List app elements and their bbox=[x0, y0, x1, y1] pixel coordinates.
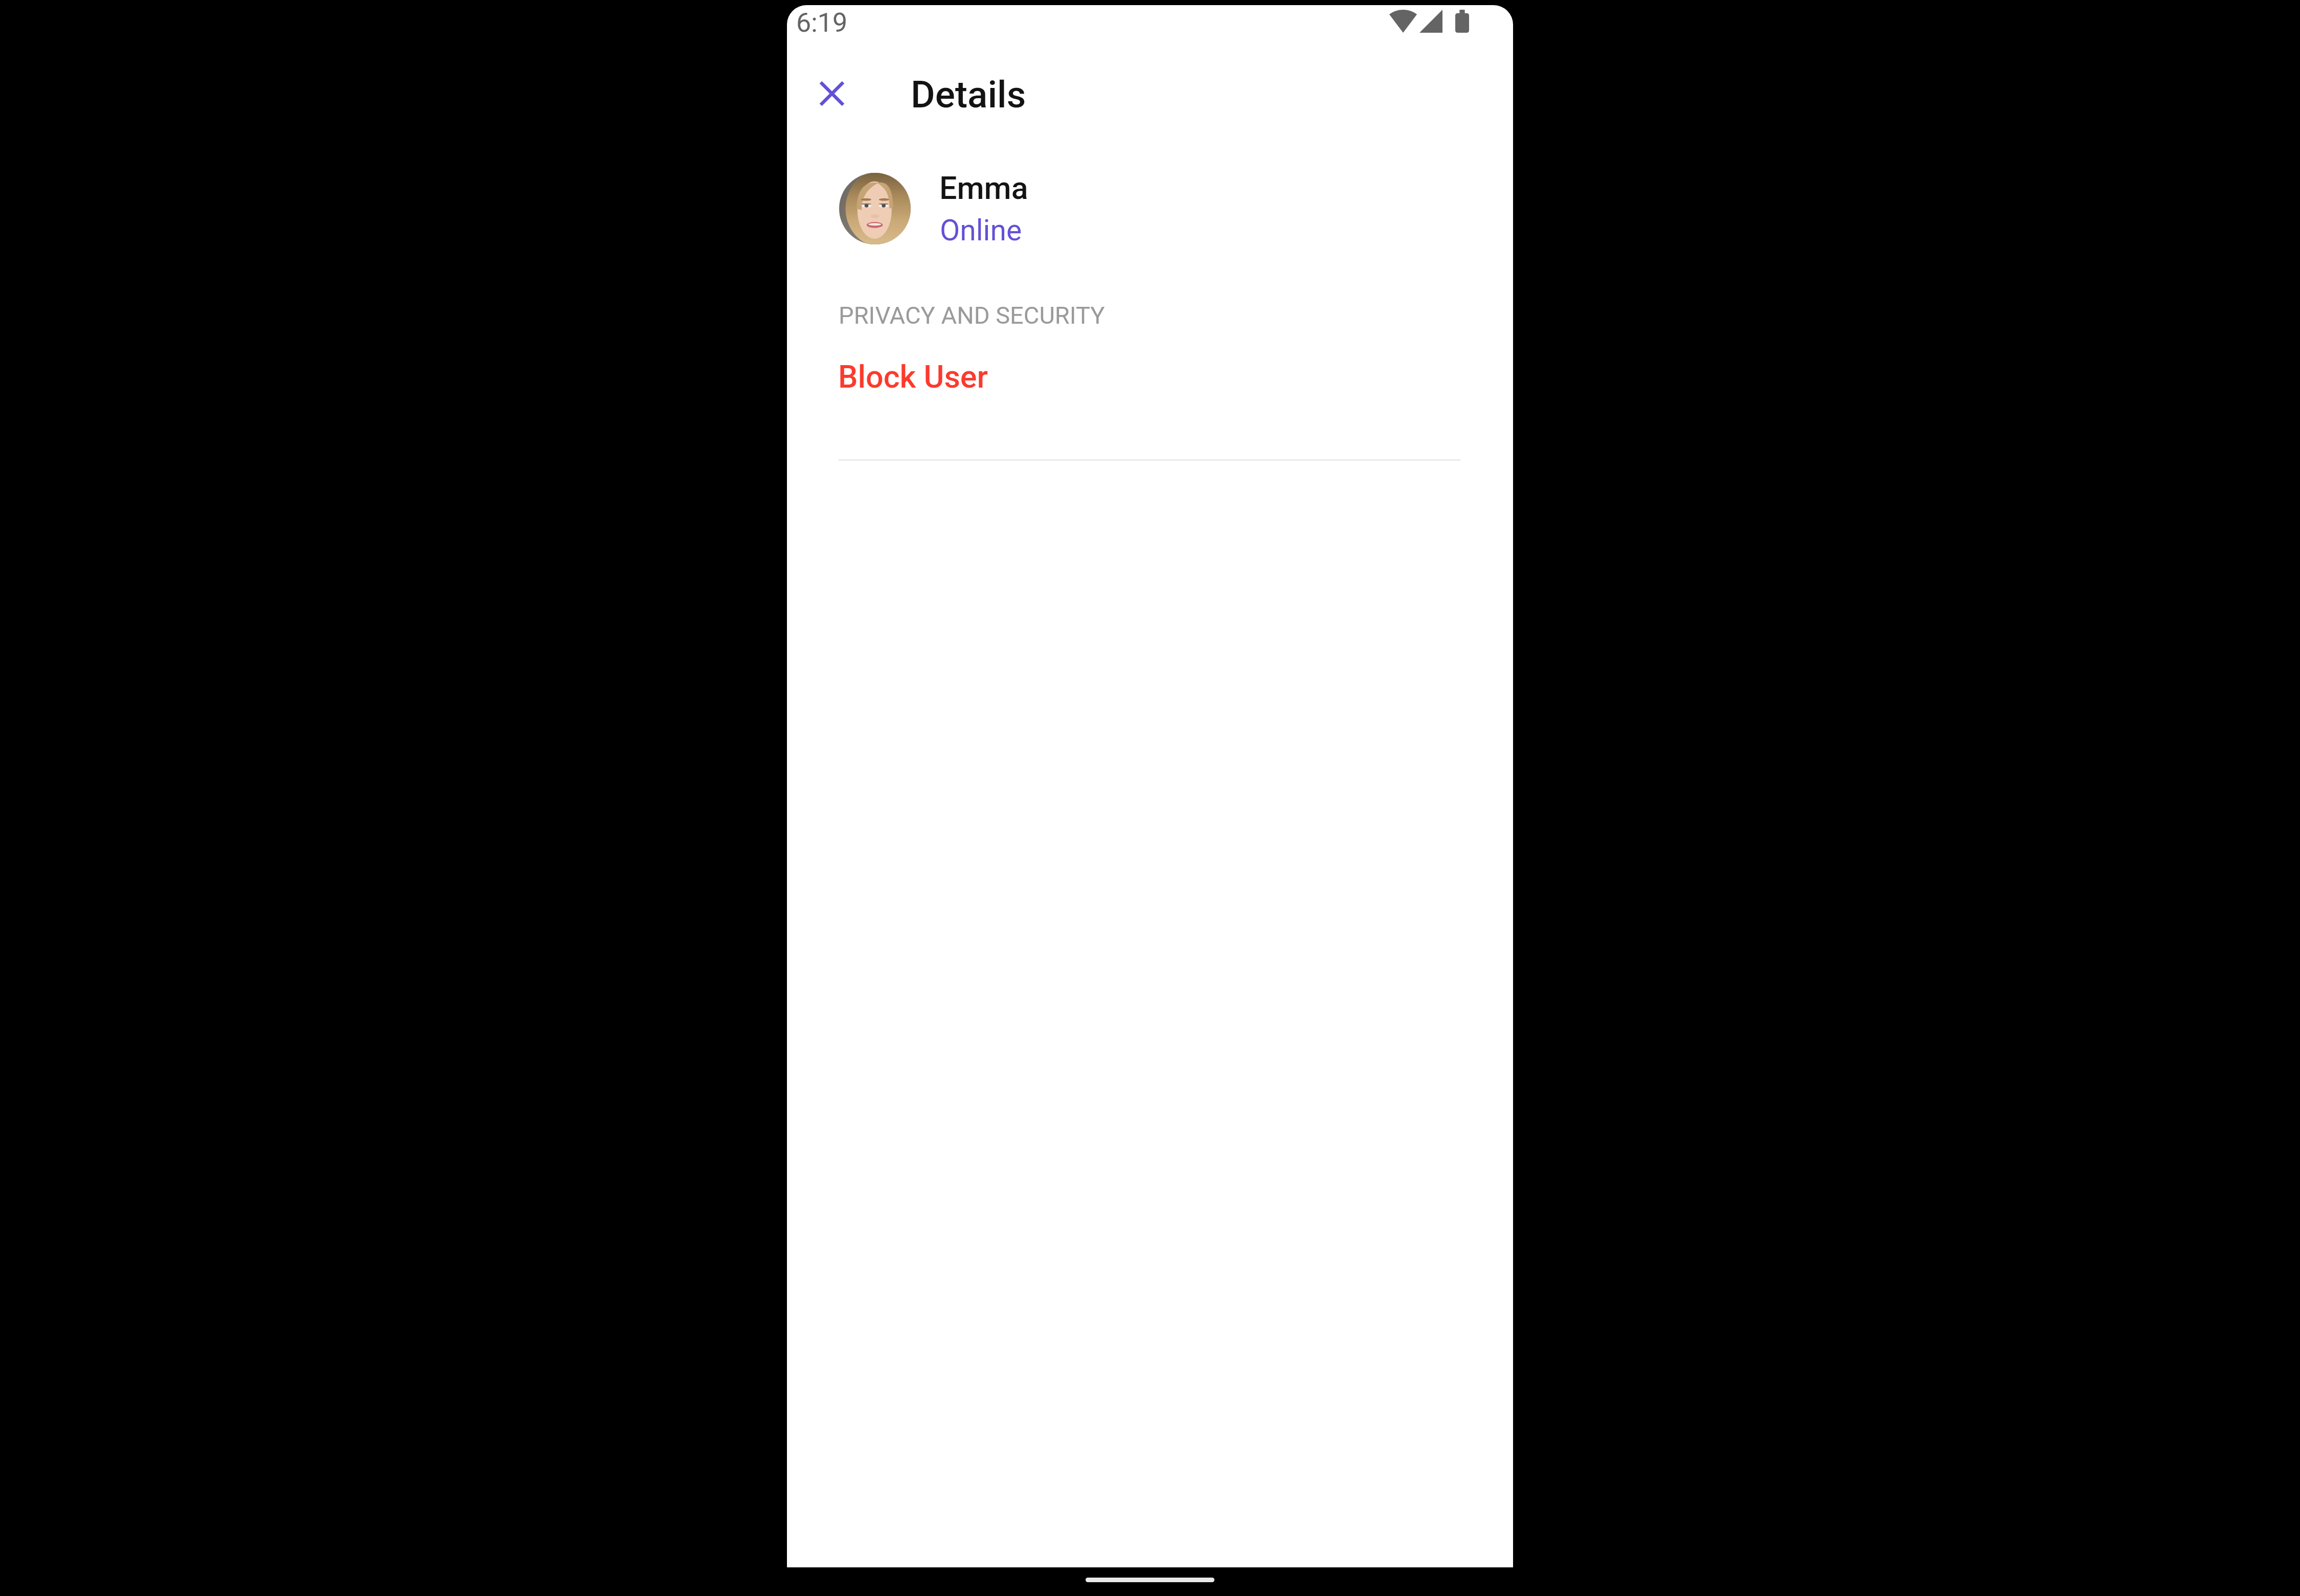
button[interactable]: Close bbox=[794, 55, 870, 132]
staticText: Details bbox=[911, 73, 1026, 117]
staticText: Block User bbox=[838, 358, 988, 395]
staticText: Online bbox=[940, 213, 1022, 248]
button[interactable]: Emma bbox=[787, 163, 1513, 255]
button[interactable]: Block User bbox=[787, 355, 1513, 412]
staticText: PRIVACY AND SECURITY bbox=[839, 301, 1105, 329]
staticText: 6:19 bbox=[796, 7, 848, 38]
staticText: Emma bbox=[939, 170, 1028, 206]
